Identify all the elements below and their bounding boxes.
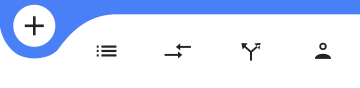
button[interactable]: Add (13, 5, 55, 47)
button[interactable]: Split (234, 34, 268, 68)
button[interactable]: Profile (306, 34, 340, 68)
button[interactable]: List (90, 34, 124, 68)
button[interactable]: Transfers (161, 34, 195, 68)
